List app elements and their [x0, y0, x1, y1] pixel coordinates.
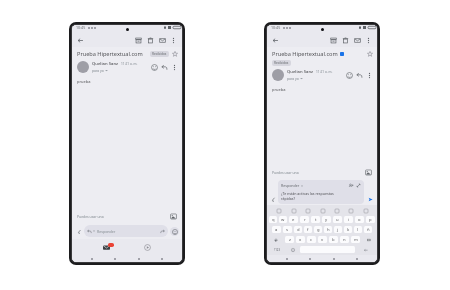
staticText: s	[286, 227, 289, 233]
staticText: d	[297, 227, 300, 233]
button[interactable]: o	[355, 216, 364, 223]
button[interactable]: Star	[171, 50, 179, 58]
button[interactable]: More options	[365, 71, 374, 80]
button[interactable]: More options	[170, 63, 179, 72]
staticText: 10:45	[271, 25, 281, 30]
button[interactable]: g	[314, 226, 322, 233]
button[interactable]: Keyboard tool 3	[304, 207, 311, 214]
staticText: p	[369, 217, 372, 223]
button[interactable]: Insert image	[364, 168, 373, 177]
button[interactable]: Back	[331, 256, 337, 262]
button[interactable]: Attach file	[75, 227, 83, 235]
button[interactable]: Attach file	[270, 197, 277, 202]
staticText: prueba	[272, 87, 286, 92]
button[interactable]: t	[311, 216, 320, 223]
staticText: f	[307, 227, 309, 233]
button[interactable]: s	[283, 226, 292, 233]
button[interactable]: Keyboard tool 5	[333, 207, 340, 214]
staticText: ?123	[274, 248, 281, 252]
button[interactable]: h	[324, 226, 332, 233]
button[interactable]: Responder	[84, 225, 168, 237]
button[interactable]: j	[334, 226, 342, 233]
staticText: j	[337, 227, 339, 233]
button[interactable]: Back	[271, 36, 280, 45]
button[interactable]: f	[304, 226, 312, 233]
button[interactable]: Enter	[357, 246, 375, 253]
button[interactable]: ñ	[364, 226, 372, 233]
button[interactable]: Sender avatar	[77, 61, 89, 73]
button[interactable]: Backspace	[362, 236, 375, 243]
button[interactable]: i	[344, 216, 353, 223]
staticText: ¿Te están activas las respuestas rápidas…	[281, 191, 334, 201]
button[interactable]: x	[296, 236, 305, 243]
button[interactable]: More options	[364, 36, 373, 45]
button[interactable]: k	[344, 226, 352, 233]
button[interactable]: Keyboard tool 2	[290, 207, 297, 214]
button[interactable]: Symbols	[269, 246, 285, 253]
button[interactable]: d	[294, 226, 302, 233]
button[interactable]: Sender avatar	[272, 69, 284, 81]
staticText: Quelian Sanz	[92, 61, 119, 67]
staticText: 11:21 a. m.	[316, 70, 333, 74]
button[interactable]: Home	[307, 256, 313, 262]
button[interactable]: m	[351, 236, 360, 243]
button[interactable]: Recibidos	[272, 60, 291, 66]
staticText: c	[310, 237, 313, 243]
staticText: a	[275, 227, 278, 233]
button[interactable]: l	[354, 226, 362, 233]
button[interactable]: r	[300, 216, 309, 223]
staticText: y	[325, 217, 328, 223]
button[interactable]: Keyboard tool 6	[347, 207, 354, 214]
button[interactable]: Keyboard tool 1	[275, 207, 282, 214]
button[interactable]: Back	[76, 36, 85, 45]
button[interactable]: Keyboard	[354, 256, 360, 262]
button[interactable]: a	[272, 226, 281, 233]
staticText: g	[317, 227, 320, 233]
button[interactable]: Archive	[329, 36, 338, 45]
button[interactable]: Recent apps	[89, 256, 95, 262]
button[interactable]: Delete	[341, 36, 350, 45]
button[interactable]: Back	[136, 256, 142, 262]
button[interactable]: Gmail	[101, 242, 112, 253]
staticText: prueba	[77, 79, 91, 84]
button[interactable]: Keyboard tool 7	[362, 207, 369, 214]
button[interactable]: b	[329, 236, 338, 243]
button[interactable]: Mark unread	[158, 36, 167, 45]
button[interactable]: u	[333, 216, 342, 223]
button[interactable]: v	[318, 236, 327, 243]
button[interactable]: Reply	[160, 63, 169, 72]
button[interactable]: Mark unread	[353, 36, 362, 45]
button[interactable]: Add reaction	[150, 63, 159, 72]
button[interactable]: Recibidos	[150, 51, 169, 57]
staticText: m	[354, 237, 358, 243]
button[interactable]: Add reaction	[345, 71, 354, 80]
button[interactable]: Shift	[269, 236, 283, 243]
button[interactable]: Send	[366, 196, 374, 202]
button[interactable]: n	[340, 236, 349, 243]
button[interactable]: Reply	[355, 71, 364, 80]
button[interactable]: e	[289, 216, 298, 223]
button[interactable]: Insert image	[169, 212, 178, 221]
staticText: b	[332, 237, 335, 243]
button[interactable]: Home	[112, 256, 118, 262]
staticText: x	[299, 237, 302, 243]
button[interactable]: Star	[366, 50, 374, 58]
button[interactable]: Delete	[146, 36, 155, 45]
button[interactable]: Keyboard	[159, 256, 165, 262]
button[interactable]: q	[269, 216, 277, 223]
button[interactable]: y	[322, 216, 331, 223]
staticText: i	[348, 217, 350, 223]
button[interactable]: Emoji	[287, 246, 298, 253]
button[interactable]: Keyboard tool 4	[319, 207, 326, 214]
button[interactable]: Recent apps	[284, 256, 290, 262]
button[interactable]: w	[279, 216, 287, 223]
button[interactable]: z	[285, 236, 294, 243]
button[interactable]: c	[307, 236, 316, 243]
button[interactable]: Emoji	[170, 227, 179, 236]
button[interactable]: Responder	[278, 180, 364, 204]
button[interactable]: Camera	[142, 242, 153, 253]
button[interactable]: Archive	[134, 36, 143, 45]
button[interactable]: More options	[169, 36, 178, 45]
button[interactable]: p	[366, 216, 375, 223]
